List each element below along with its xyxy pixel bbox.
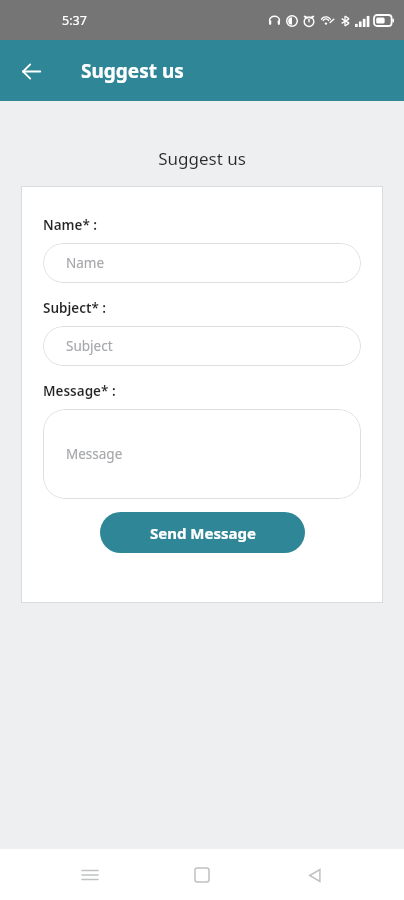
button[interactable]: Subject xyxy=(43,326,361,366)
staticText: Send Message xyxy=(150,523,256,543)
button[interactable]: Back xyxy=(11,51,51,91)
button[interactable]: Recent apps xyxy=(68,853,112,897)
button[interactable]: Name xyxy=(43,243,361,283)
staticText: Suggest us xyxy=(81,58,184,84)
button[interactable]: Home xyxy=(180,853,224,897)
staticText: Name xyxy=(66,254,105,272)
staticText: Message xyxy=(66,445,123,463)
staticText: Suggest us xyxy=(0,147,404,170)
staticText: 5:37 xyxy=(62,12,87,29)
staticText: Message* : xyxy=(43,382,116,400)
button[interactable]: Back xyxy=(292,853,336,897)
button[interactable]: Message xyxy=(43,409,361,499)
staticText: Subject xyxy=(66,337,113,355)
staticText: Subject* : xyxy=(43,299,107,317)
button[interactable]: Send Message xyxy=(100,512,305,553)
staticText: Name* : xyxy=(43,216,98,234)
